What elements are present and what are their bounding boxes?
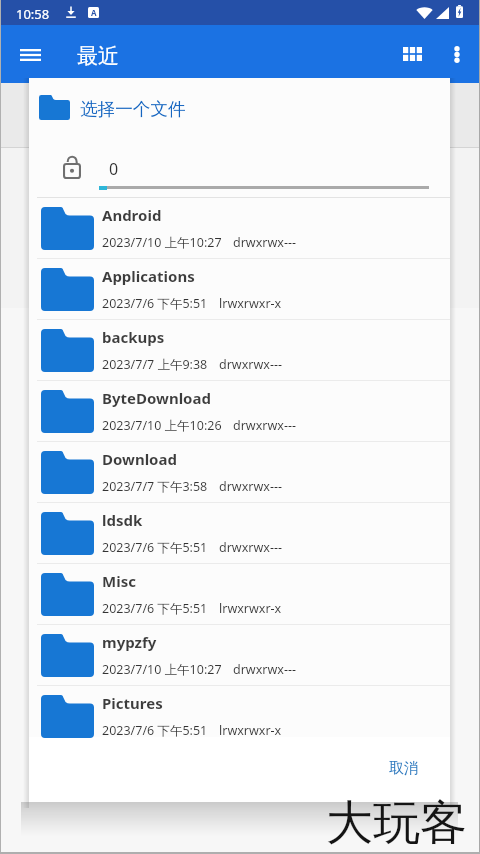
staticText: drwxrwx--- — [233, 417, 296, 434]
staticText: drwxrwx--- — [219, 539, 282, 556]
staticText: drwxrwx--- — [219, 356, 282, 373]
staticText: A — [91, 7, 97, 18]
staticText: lrwxrwxr-x — [219, 295, 282, 312]
staticText: 2023/7/7 上午9:38 — [102, 356, 208, 373]
button[interactable]: Android — [29, 198, 450, 258]
staticText: 2023/7/10 上午10:27 — [102, 234, 222, 251]
staticText: 2023/7/6 下午5:51 — [102, 600, 208, 617]
button[interactable]: Grid view — [388, 31, 436, 77]
button[interactable]: Download — [29, 442, 450, 502]
staticText: mypzfy — [102, 632, 157, 652]
button[interactable]: Applications — [29, 259, 450, 319]
staticText: 2023/7/7 下午3:58 — [102, 478, 208, 495]
staticText: backups — [102, 327, 165, 347]
staticText: 2023/7/6 下午5:51 — [102, 295, 208, 312]
button[interactable]: backups — [29, 320, 450, 380]
button[interactable]: 取消 — [373, 745, 435, 791]
staticText: Pictures — [102, 693, 163, 713]
staticText: Download — [102, 449, 177, 469]
button[interactable]: mypzfy — [29, 625, 450, 685]
staticText: 大玩客 — [326, 794, 467, 853]
staticText: 10:58 — [16, 5, 50, 23]
staticText: 选择一个文件 — [80, 98, 186, 120]
staticText: ByteDownload — [102, 388, 211, 408]
staticText: drwxrwx--- — [219, 478, 282, 495]
button[interactable]: More options — [434, 31, 479, 77]
staticText: Misc — [102, 571, 136, 591]
button[interactable]: Unlock — [58, 152, 86, 180]
button[interactable]: ldsdk — [29, 503, 450, 563]
staticText: 取消 — [389, 759, 419, 778]
staticText: 2023/7/6 下午5:51 — [102, 722, 208, 739]
button[interactable]: ByteDownload — [29, 381, 450, 441]
staticText: lrwxrwxr-x — [219, 722, 282, 739]
staticText: drwxrwx--- — [233, 661, 296, 678]
staticText: 0 — [109, 158, 119, 180]
button[interactable]: Misc — [29, 564, 450, 624]
staticText: drwxrwx--- — [233, 234, 296, 251]
staticText: lrwxrwxr-x — [219, 600, 282, 617]
staticText: Applications — [102, 266, 195, 286]
staticText: Android — [102, 205, 162, 225]
staticText: 2023/7/6 下午5:51 — [102, 539, 208, 556]
button[interactable]: Menu — [6, 35, 54, 75]
staticText: 2023/7/10 上午10:27 — [102, 661, 222, 678]
button[interactable]: Pictures — [29, 686, 450, 746]
staticText: ldsdk — [102, 510, 143, 530]
staticText: 2023/7/10 上午10:26 — [102, 417, 222, 434]
staticText: 最近 — [77, 43, 119, 69]
